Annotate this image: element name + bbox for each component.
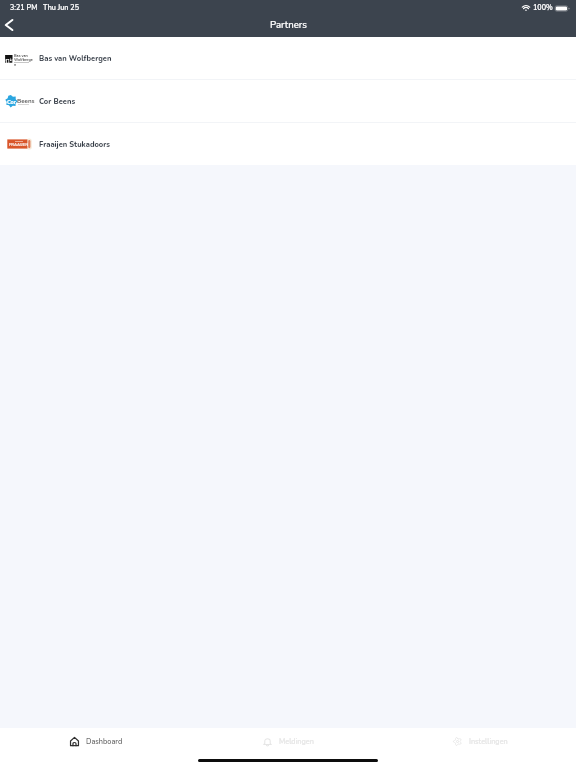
staticText: Dashboard [86,737,123,747]
button[interactable]: Meldingen [192,728,384,755]
staticText: Fraaijen Stukadoors [39,139,111,149]
staticText: 3:21 PM [10,3,38,13]
staticText: Wolfbergen [14,57,35,67]
staticText: Cor Beens [39,96,76,106]
button[interactable]: FRAAIJEN [0,123,576,165]
staticText: Instellingen [469,737,508,747]
staticText: 100% [533,3,553,13]
button[interactable]: Dashboard [0,728,192,755]
staticText: Beens [17,97,35,105]
staticText: Bas van [14,53,28,58]
button[interactable]: Back [0,13,18,37]
staticText: Partners [270,18,307,31]
staticText: Thu Jun 25 [43,3,79,13]
button[interactable]: Bas van [0,37,576,79]
staticText: Bas van Wolfbergen [39,53,112,63]
staticText: Cor [7,98,17,106]
button[interactable]: Cor [0,80,576,122]
button[interactable]: Instellingen [384,728,576,755]
staticText: Meldingen [279,737,314,747]
staticText: FRAAIJEN [9,142,29,148]
